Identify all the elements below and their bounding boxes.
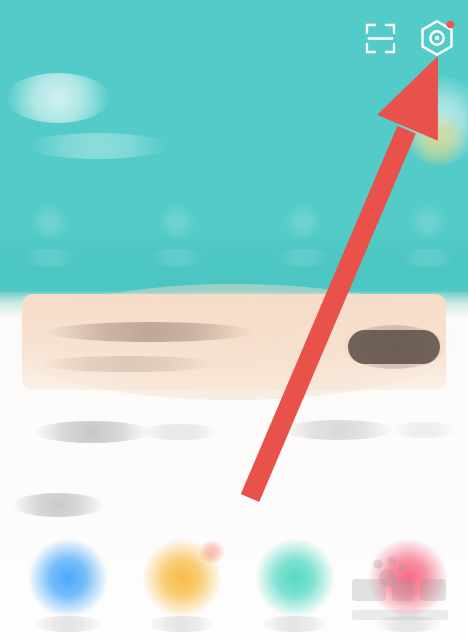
button[interactable]: Scan <box>358 16 402 60</box>
button[interactable]: Shortcut 4 <box>368 538 448 618</box>
button[interactable] <box>348 330 440 364</box>
button[interactable]: Shortcut 1 <box>28 538 108 618</box>
button[interactable]: Shortcut 3 <box>255 538 335 618</box>
button[interactable]: Settings <box>414 15 460 61</box>
button[interactable] <box>22 294 446 390</box>
button[interactable]: Shortcut 2 <box>142 538 222 618</box>
